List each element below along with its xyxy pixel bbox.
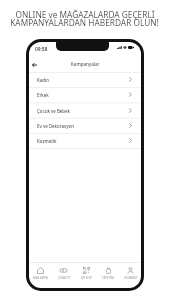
button[interactable]: Erkek (29, 87, 141, 102)
button[interactable]: Çocuk ve Bebek (29, 103, 141, 118)
button[interactable]: ANA SAYFA (29, 263, 52, 288)
staticText: ONLINE ve MAĞAZALARDA GEÇERLİ (15, 9, 155, 20)
button[interactable]: Kozmetik (29, 133, 141, 148)
button[interactable]: Back (29, 59, 40, 70)
staticText: LOYALTY (58, 276, 70, 280)
staticText: Erkek (37, 92, 49, 98)
button[interactable]: QR KOD (75, 263, 97, 288)
button[interactable]: Ev ve Dekorasyon (29, 118, 141, 133)
staticText: HESABIM (124, 276, 137, 280)
staticText: QR KOD (81, 276, 92, 280)
staticText: SEPETİM (102, 276, 114, 280)
staticText: Kampanyalar (71, 61, 100, 67)
staticText: Çocuk ve Bebek (37, 108, 71, 114)
button[interactable]: HESABIM (119, 263, 141, 288)
staticText: 09:58 (35, 46, 48, 53)
staticText: KAMPANYALARDAN HABERDAR OLUN! (10, 17, 159, 28)
button[interactable]: Kadın (29, 72, 141, 87)
button[interactable]: LOYALTY (52, 263, 75, 288)
staticText: Kozmetik (37, 138, 57, 144)
staticText: ANA SAYFA (33, 276, 48, 280)
staticText: Kadın (37, 77, 49, 83)
staticText: Ev ve Dekorasyon (37, 123, 74, 129)
button[interactable]: SEPETİM (97, 263, 119, 288)
